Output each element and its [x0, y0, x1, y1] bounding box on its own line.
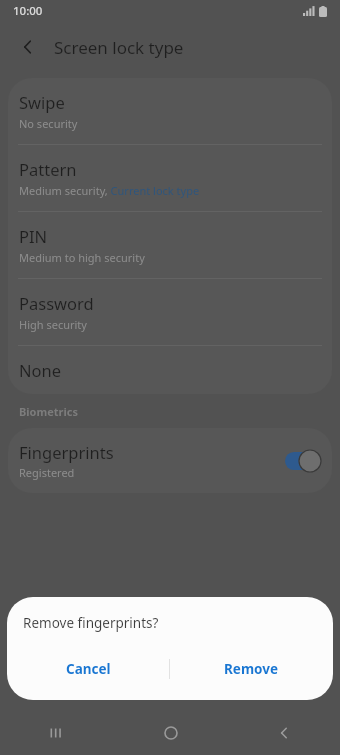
staticText: Medium security, Current lock type	[19, 183, 200, 198]
staticText: Registered	[19, 465, 75, 480]
staticText: None	[19, 359, 62, 381]
button[interactable]: Fingerprints	[8, 428, 332, 493]
staticText: High security	[19, 317, 87, 332]
button[interactable]: Back	[227, 710, 340, 755]
button[interactable]: Remove	[170, 652, 333, 686]
staticText: Password	[19, 292, 94, 314]
staticText: Swipe	[19, 91, 65, 113]
button[interactable]: Back	[12, 31, 44, 63]
button[interactable]: Home	[114, 710, 227, 755]
button[interactable]: Cancel	[7, 652, 169, 686]
button[interactable]: Recents	[0, 710, 114, 755]
button[interactable]: None	[8, 346, 332, 394]
button[interactable]: PIN	[8, 212, 332, 278]
staticText: Cancel	[66, 660, 111, 678]
staticText: 10:00	[13, 3, 43, 19]
staticText: Medium to high security	[19, 250, 145, 265]
button[interactable]: Swipe	[8, 78, 332, 144]
staticText: Biometrics	[19, 404, 78, 419]
staticText: Pattern	[19, 158, 77, 180]
staticText: Fingerprints	[19, 441, 114, 463]
button[interactable]: Pattern	[8, 145, 332, 211]
staticText: No security	[19, 116, 78, 131]
button[interactable]: Password	[8, 279, 332, 345]
staticText: Screen lock type	[54, 36, 184, 59]
staticText: PIN	[19, 225, 48, 247]
staticText: Remove	[224, 660, 279, 678]
button[interactable]: Fingerprints toggle	[285, 450, 321, 472]
staticText: Remove fingerprints?	[23, 614, 159, 632]
